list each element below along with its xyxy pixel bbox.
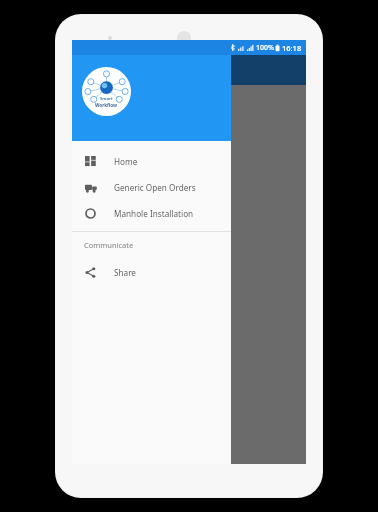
other: Generic Open Orders xyxy=(85,182,97,194)
button[interactable]: Home xyxy=(72,148,231,174)
staticText: Share xyxy=(114,267,136,278)
other: Manhole Installation xyxy=(85,208,96,219)
button[interactable]: Generic Open Orders xyxy=(72,174,231,200)
staticText: 16:18 xyxy=(282,43,302,53)
staticText: Workflow xyxy=(95,102,118,108)
staticText: 100% xyxy=(256,43,274,53)
staticText: Communicate xyxy=(84,240,134,250)
staticText: Home xyxy=(114,156,138,167)
staticText: Manhole Installation xyxy=(114,208,194,219)
button[interactable]: Manhole Installation xyxy=(72,200,231,226)
other: Home xyxy=(85,156,96,167)
other: Share xyxy=(85,267,96,278)
staticText: Generic Open Orders xyxy=(114,182,196,193)
button[interactable]: Share xyxy=(72,259,231,285)
staticText: Smart xyxy=(100,96,113,102)
